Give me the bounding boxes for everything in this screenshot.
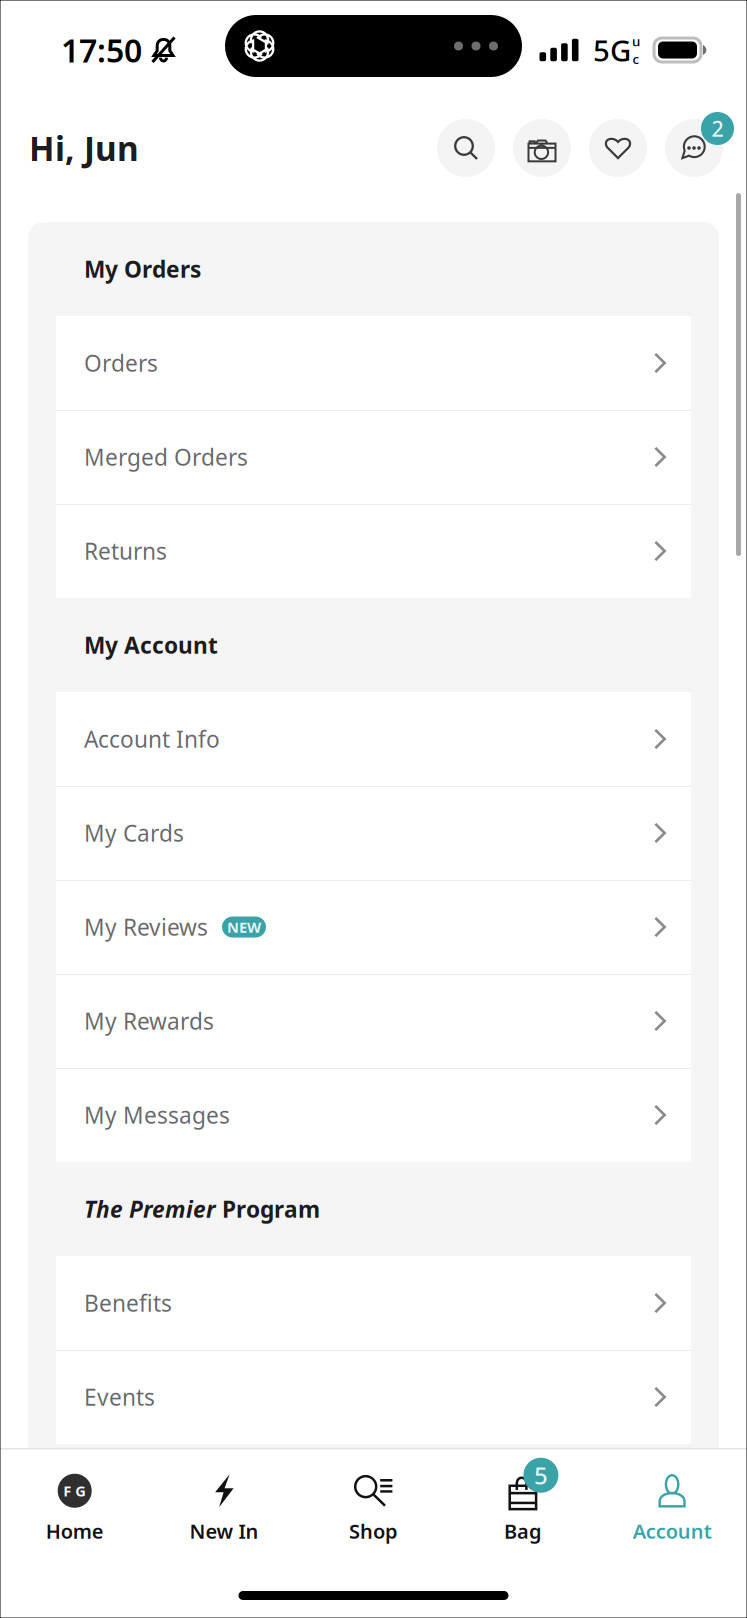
staticText: Shop <box>349 1518 398 1544</box>
staticText: My Cards <box>84 818 184 848</box>
staticText: 17:50 <box>61 29 142 71</box>
staticText: The Premier <box>84 1194 216 1224</box>
button[interactable]: Account <box>598 1449 747 1618</box>
staticText: Hi, Jun <box>29 126 139 170</box>
button[interactable]: My Cards <box>56 786 691 880</box>
staticText: New In <box>190 1518 259 1544</box>
staticText: Events <box>84 1382 155 1412</box>
button[interactable]: Scan <box>513 119 571 177</box>
button[interactable]: Merged Orders <box>56 410 691 504</box>
staticText: My Orders <box>84 254 201 284</box>
staticText: Returns <box>84 536 167 566</box>
staticText: Benefits <box>84 1288 172 1318</box>
staticText: Orders <box>84 348 158 378</box>
button[interactable]: 5 <box>448 1449 598 1618</box>
button[interactable]: My Rewards <box>56 974 691 1068</box>
button[interactable]: Shop <box>299 1449 448 1618</box>
staticText: F G <box>63 1481 86 1500</box>
button[interactable]: F G <box>0 1449 149 1618</box>
button[interactable]: Account Info <box>56 692 691 786</box>
staticText: Bag <box>504 1518 542 1544</box>
button[interactable]: Returns <box>56 504 691 598</box>
button[interactable]: Events <box>56 1350 691 1444</box>
button[interactable]: Orders <box>56 316 691 410</box>
staticText: 5 <box>534 1459 548 1491</box>
staticText: Account <box>633 1518 712 1544</box>
button[interactable]: My Reviews <box>56 880 691 974</box>
staticText: Program <box>216 1194 320 1224</box>
staticText: c <box>632 50 639 68</box>
staticText: Account Info <box>84 724 220 754</box>
button[interactable]: Messages <box>665 119 723 177</box>
staticText: NEW <box>227 917 261 937</box>
button[interactable]: Benefits <box>56 1256 691 1350</box>
staticText: u <box>632 32 640 50</box>
staticText: 2 <box>711 114 723 143</box>
button[interactable]: My Messages <box>56 1068 691 1162</box>
button[interactable]: Search <box>437 119 495 177</box>
staticText: My Rewards <box>84 1006 214 1036</box>
staticText: My Account <box>84 630 218 660</box>
staticText: Merged Orders <box>84 442 248 472</box>
button[interactable]: Wishlist <box>589 119 647 177</box>
staticText: 5G <box>593 30 631 69</box>
staticText: Home <box>46 1518 104 1544</box>
button[interactable]: New In <box>149 1449 299 1618</box>
staticText: My Messages <box>84 1100 230 1130</box>
staticText: My Reviews <box>84 912 208 942</box>
